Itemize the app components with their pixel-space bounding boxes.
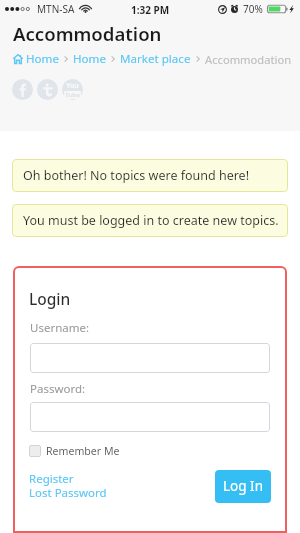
button[interactable]: Remember Me bbox=[29, 444, 120, 458]
staticText: Oh bother! No topics were found here! bbox=[23, 167, 250, 184]
button[interactable] bbox=[30, 343, 270, 373]
button[interactable]: Home bbox=[73, 51, 106, 67]
staticText: Home bbox=[26, 51, 59, 67]
staticText: Tube bbox=[65, 91, 80, 99]
staticText: Remember Me bbox=[46, 444, 120, 458]
staticText: Login bbox=[29, 288, 71, 309]
staticText: 70% bbox=[243, 2, 263, 16]
button[interactable]: Log In bbox=[215, 470, 271, 503]
staticText: You must be logged in to create new topi… bbox=[23, 212, 279, 229]
button[interactable]: Facebook bbox=[12, 79, 33, 100]
staticText: Username: bbox=[30, 320, 90, 336]
button[interactable]: Lost Password bbox=[29, 485, 107, 501]
staticText: Log In bbox=[223, 477, 263, 495]
button[interactable]: Register bbox=[29, 471, 74, 487]
staticText: Accommodation bbox=[205, 52, 292, 67]
button[interactable] bbox=[30, 402, 270, 432]
button[interactable]: Market place bbox=[120, 51, 191, 67]
staticText: 1:32 PM bbox=[131, 3, 170, 17]
button[interactable]: Twitter bbox=[37, 79, 58, 100]
staticText: Password: bbox=[30, 381, 86, 397]
staticText: Accommodation bbox=[13, 21, 162, 46]
staticText: MTN-SA bbox=[37, 2, 75, 16]
button[interactable]: YouTube bbox=[62, 79, 83, 100]
staticText: You bbox=[66, 81, 79, 90]
button[interactable]: Home bbox=[13, 51, 59, 67]
